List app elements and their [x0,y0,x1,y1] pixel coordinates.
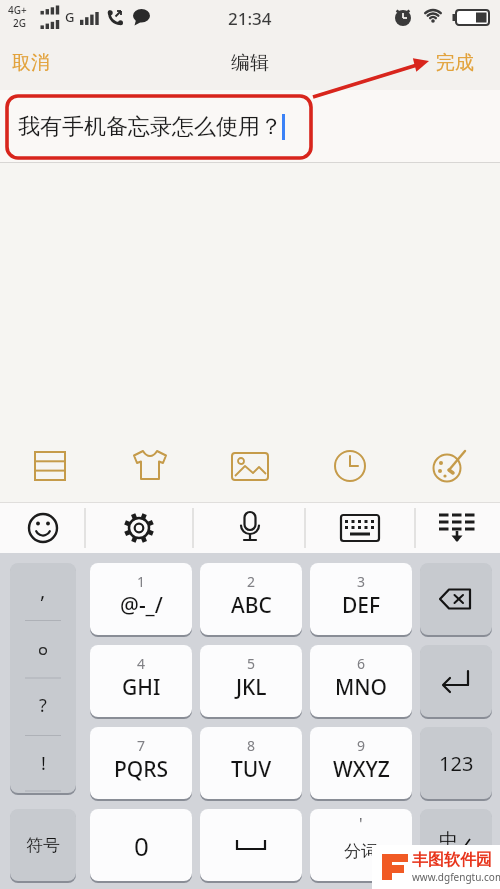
button[interactable]: 完成 [436,51,474,75]
staticText: GHI [122,673,161,702]
staticText: 123 [439,750,474,777]
staticText: 2 [247,572,256,591]
staticText: 分词 [344,841,378,862]
staticText: ? [39,693,47,718]
button[interactable]: 8 [200,727,302,799]
button[interactable] [200,809,302,881]
button[interactable] [125,441,175,491]
staticText: 1 [137,572,146,591]
staticText: G [65,8,75,26]
button[interactable]: 1 [90,563,192,635]
button[interactable]: 3 [310,563,412,635]
button[interactable] [420,563,492,635]
button[interactable] [420,645,492,717]
staticText: 英 [465,848,476,862]
staticText: 21:34 [228,7,272,30]
staticText: PQRS [114,755,169,784]
staticText: 5 [247,654,256,673]
button[interactable] [25,441,75,491]
button[interactable]: 中 [420,809,492,881]
staticText: 4 [137,654,146,673]
staticText: 2G [13,16,26,30]
button[interactable] [325,441,375,491]
button[interactable]: , [10,563,76,793]
staticText: 8 [247,736,256,755]
staticText: ! [41,751,46,776]
button[interactable]: 取消 [12,51,50,75]
staticText: 6 [357,654,366,673]
button[interactable] [337,505,383,551]
staticText: 7 [137,736,146,755]
staticText: ABC [231,591,272,620]
staticText: MNO [335,673,388,702]
staticText: 0 [134,828,149,863]
button[interactable]: 5 [200,645,302,717]
button[interactable]: 123 [420,727,492,799]
staticText: @-_/ [120,591,163,620]
staticText: 9 [357,736,366,755]
staticText: 完成 [436,51,474,75]
staticText: WXYZ [333,755,390,784]
staticText: 4G+ [8,3,27,17]
staticText: 取消 [12,51,50,75]
button[interactable] [20,505,66,551]
staticText: 丰图软件园 [412,850,492,870]
staticText: , [40,577,46,604]
staticText: 编辑 [231,51,269,75]
staticText: 中 [439,829,458,853]
staticText: www.dgfengtu.com [412,870,500,884]
button[interactable]: 符号 [10,809,76,881]
staticText: 3 [357,572,366,591]
staticText: JKL [236,673,267,702]
staticText: 我有手机备忘录怎么使用？ [18,113,282,141]
button[interactable]: 6 [310,645,412,717]
button[interactable] [225,441,275,491]
button[interactable]: ' [310,809,412,881]
staticText: ' [359,813,363,835]
button[interactable] [434,505,480,551]
button[interactable] [116,505,162,551]
button[interactable]: 9 [310,727,412,799]
staticText: DEF [342,591,381,620]
button[interactable]: 2 [200,563,302,635]
button[interactable] [227,505,273,551]
button[interactable]: 4 [90,645,192,717]
staticText: 符号 [26,835,60,856]
staticText: TUV [231,755,272,784]
button[interactable]: 0 [90,809,192,881]
button[interactable]: 7 [90,727,192,799]
button[interactable] [425,441,475,491]
